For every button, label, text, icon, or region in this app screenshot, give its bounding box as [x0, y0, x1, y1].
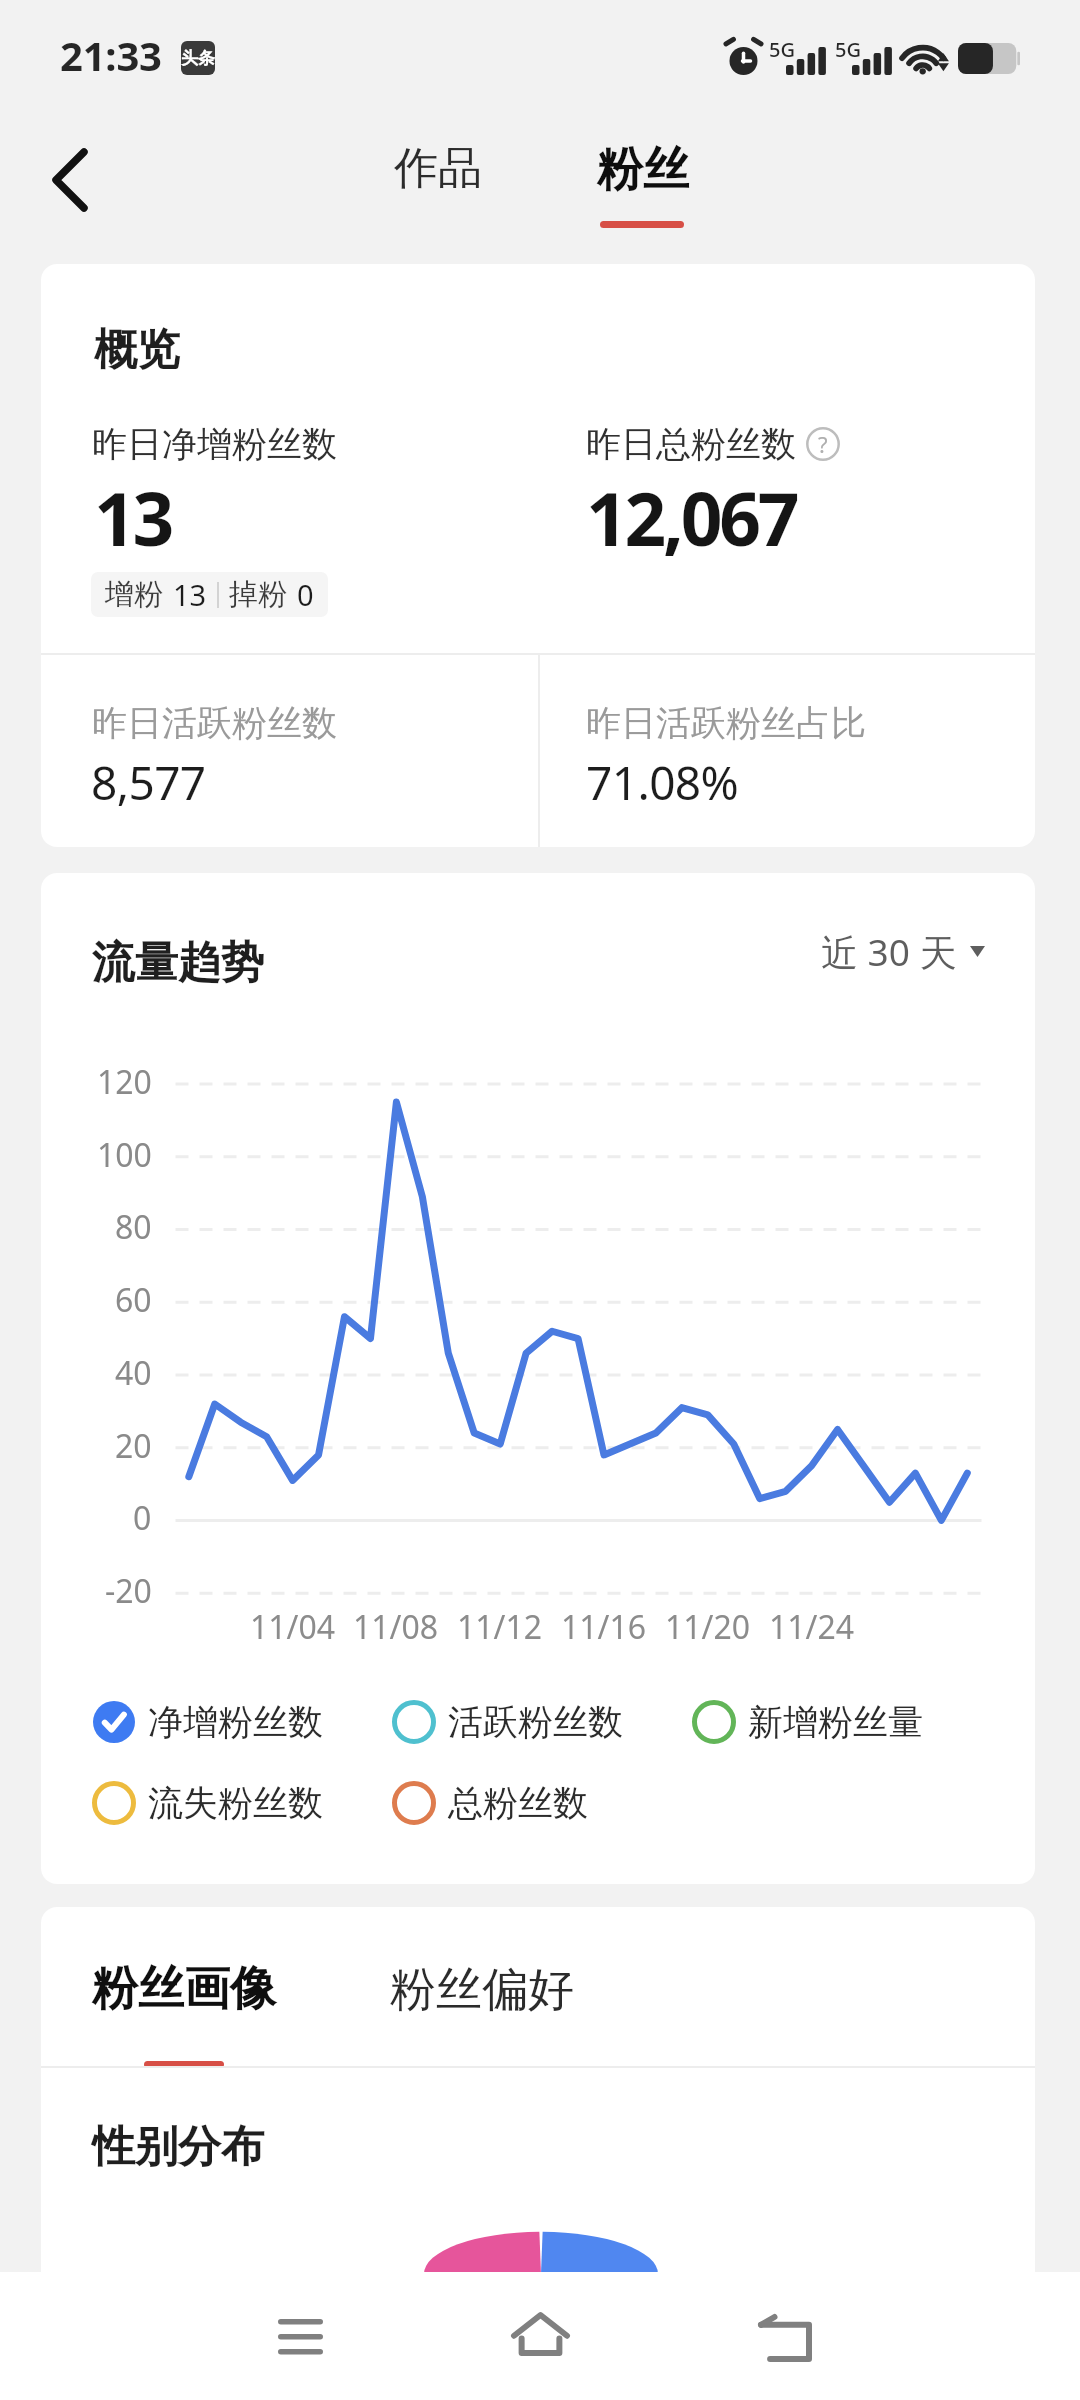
- staticText: 粉丝: [597, 141, 689, 199]
- staticText: ?: [818, 429, 828, 459]
- button[interactable]: 近 30 天: [811, 913, 995, 989]
- button[interactable]: Help: [803, 424, 843, 464]
- staticText: 昨日活跃粉丝占比: [586, 701, 866, 745]
- button[interactable]: Recent apps: [245, 2282, 355, 2392]
- button[interactable]: Yesterday active fans: [41, 654, 538, 847]
- staticText: 0: [297, 575, 314, 614]
- staticText: 昨日总粉丝数: [586, 422, 796, 466]
- staticText: 作品: [394, 141, 482, 196]
- staticText: 21:33: [60, 28, 162, 82]
- staticText: -20: [105, 1569, 152, 1613]
- staticText: 100: [97, 1133, 152, 1177]
- button[interactable]: Back: [15, 125, 125, 235]
- staticText: 71.08%: [586, 751, 739, 814]
- staticText: 头条: [181, 48, 215, 69]
- staticText: 流量趋势: [92, 936, 264, 990]
- button[interactable]: 活跃粉丝数: [391, 1692, 671, 1752]
- staticText: 增粉: [105, 576, 163, 613]
- staticText: 概览: [94, 323, 180, 377]
- staticText: 13: [94, 468, 172, 567]
- button[interactable]: 粉丝偏好: [380, 1947, 586, 2037]
- staticText: 12,067: [586, 468, 797, 567]
- staticText: 5G: [769, 36, 795, 63]
- staticText: 11/24: [769, 1605, 855, 1649]
- staticText: 粉丝偏好: [390, 1961, 574, 2019]
- staticText: 掉粉: [229, 576, 287, 613]
- staticText: 活跃粉丝数: [448, 1700, 623, 1744]
- staticText: 11/20: [665, 1605, 751, 1649]
- button[interactable]: Yesterday active fans ratio: [540, 654, 1035, 847]
- staticText: 80: [115, 1205, 152, 1249]
- staticText: 5G: [835, 36, 861, 63]
- staticText: 120: [97, 1060, 152, 1104]
- staticText: 20: [115, 1424, 152, 1468]
- staticText: 11/08: [353, 1605, 439, 1649]
- staticText: 40: [115, 1351, 152, 1395]
- staticText: 8,577: [91, 751, 206, 814]
- staticText: 13: [173, 575, 207, 614]
- staticText: 总粉丝数: [448, 1781, 588, 1825]
- button[interactable]: 粉丝: [562, 118, 722, 238]
- staticText: 净增粉丝数: [148, 1700, 323, 1744]
- staticText: 0: [133, 1496, 152, 1540]
- staticText: 60: [115, 1278, 152, 1322]
- button[interactable]: Home: [485, 2279, 595, 2389]
- button[interactable]: Back: [730, 2283, 840, 2393]
- staticText: 11/16: [561, 1605, 647, 1649]
- button[interactable]: 净增粉丝数: [91, 1692, 371, 1752]
- button[interactable]: 粉丝画像: [82, 1947, 288, 2067]
- staticText: 新增粉丝量: [748, 1700, 923, 1744]
- staticText: 性别分布: [92, 2120, 264, 2174]
- button[interactable]: 流失粉丝数: [91, 1773, 371, 1833]
- staticText: 近 30 天: [821, 926, 957, 977]
- button[interactable]: 作品: [364, 122, 512, 214]
- staticText: 粉丝画像: [92, 1960, 276, 2018]
- staticText: 11/04: [250, 1605, 336, 1649]
- staticText: 昨日净增粉丝数: [92, 422, 337, 466]
- button[interactable]: 总粉丝数: [391, 1773, 671, 1833]
- button[interactable]: 新增粉丝量: [691, 1692, 971, 1752]
- staticText: 流失粉丝数: [148, 1781, 323, 1825]
- staticText: 11/12: [457, 1605, 543, 1649]
- staticText: 昨日活跃粉丝数: [92, 701, 337, 745]
